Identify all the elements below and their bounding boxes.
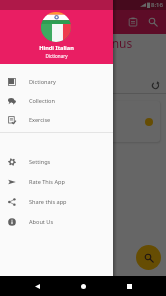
button[interactable]: About Us bbox=[0, 212, 113, 232]
button[interactable]: Refresh bbox=[147, 77, 163, 93]
staticText: Dictionary bbox=[29, 78, 56, 86]
staticText: 8:16 bbox=[151, 1, 163, 9]
staticText: About Us bbox=[29, 218, 54, 226]
button[interactable]: Settings bbox=[0, 152, 113, 172]
button[interactable]: Exercise bbox=[0, 110, 113, 129]
button[interactable]: Search bbox=[136, 245, 161, 270]
staticText: Share this app bbox=[29, 198, 67, 206]
staticText: Menus bbox=[94, 35, 133, 51]
button[interactable]: Rate This App bbox=[0, 172, 113, 192]
staticText: Dictionary bbox=[45, 53, 68, 59]
button[interactable]: Home bbox=[74, 277, 92, 295]
button[interactable]: Share this app bbox=[0, 192, 113, 212]
staticText: Exercise bbox=[29, 116, 51, 124]
button[interactable]: Dictionary bbox=[0, 72, 113, 91]
button[interactable]: Recent apps bbox=[120, 277, 138, 295]
staticText: Rate This App bbox=[29, 178, 65, 186]
button[interactable]: Collection bbox=[0, 91, 113, 110]
staticText: Hindi Italian bbox=[39, 44, 74, 52]
button[interactable]: Search bbox=[144, 13, 162, 31]
staticText: Settings bbox=[29, 158, 51, 166]
button[interactable]: Clipboard bbox=[124, 13, 142, 31]
button[interactable] bbox=[6, 101, 160, 142]
button[interactable]: Back bbox=[28, 277, 46, 295]
staticText: Collection bbox=[29, 97, 55, 105]
